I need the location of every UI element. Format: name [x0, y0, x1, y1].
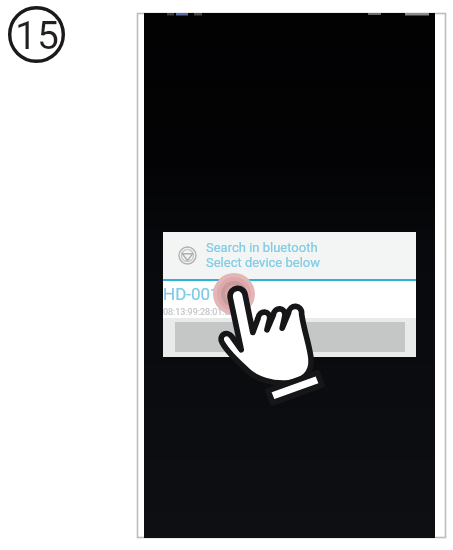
- staticText: 15: [15, 13, 59, 59]
- button[interactable]: HD-0012: [163, 281, 416, 318]
- other: Search: [178, 246, 197, 265]
- staticText: 08:13:99:28:01:0A: [163, 307, 236, 318]
- staticText: Select device below: [206, 255, 321, 270]
- staticText: HD-0012: [163, 284, 230, 304]
- staticText: Search in bluetooth: [206, 240, 318, 255]
- other: Tap: [0, 0, 453, 550]
- button[interactable]: [175, 322, 405, 352]
- button[interactable]: Search: [163, 232, 416, 279]
